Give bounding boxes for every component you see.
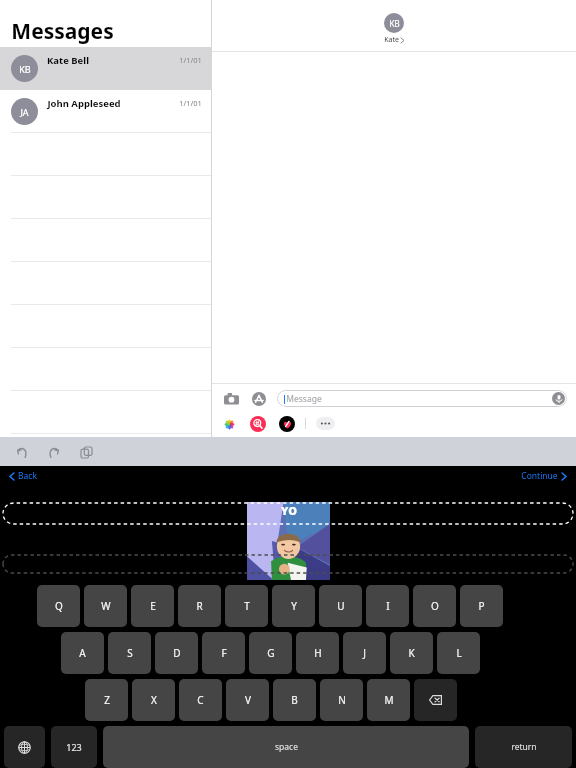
button[interactable]: J — [343, 632, 386, 674]
button[interactable]: YO — [247, 502, 330, 580]
button[interactable]: G — [249, 632, 292, 674]
button[interactable]: 123 — [51, 726, 97, 768]
staticText: F — [221, 646, 227, 660]
button[interactable]: Redo — [44, 442, 64, 462]
button[interactable]: Kate — [384, 35, 404, 45]
staticText: E — [150, 599, 156, 613]
button[interactable] — [2, 554, 574, 574]
button[interactable] — [0, 219, 211, 262]
button[interactable]: E — [131, 585, 174, 627]
button[interactable]: return — [475, 726, 572, 768]
staticText: KB — [19, 63, 31, 75]
button[interactable]: K — [390, 632, 433, 674]
button[interactable]: P — [460, 585, 503, 627]
staticText: return — [511, 741, 537, 753]
button[interactable] — [0, 434, 211, 477]
staticText: A — [79, 646, 86, 660]
button[interactable]: Back — [10, 470, 37, 482]
button[interactable]: Z — [85, 679, 128, 721]
staticText: X — [151, 693, 157, 707]
staticText: JA — [20, 106, 29, 118]
button[interactable]: KB — [384, 13, 404, 33]
button[interactable] — [2, 502, 574, 525]
staticText: 123 — [66, 741, 82, 753]
staticText: KB — [389, 18, 400, 29]
staticText: 1/1/01 — [179, 98, 202, 108]
staticText: N — [338, 693, 346, 707]
button[interactable]: I — [366, 585, 409, 627]
staticText: O — [431, 599, 439, 613]
button[interactable] — [0, 305, 211, 348]
staticText: Message — [286, 393, 322, 405]
staticText: I — [386, 599, 390, 613]
staticText: D — [173, 646, 181, 660]
staticText: W — [101, 599, 111, 613]
staticText: L — [456, 646, 462, 660]
button[interactable]: A — [61, 632, 104, 674]
button[interactable]: B — [273, 679, 316, 721]
button[interactable] — [0, 176, 211, 219]
staticText: K — [408, 646, 415, 660]
button[interactable]: Undo — [12, 442, 32, 462]
button[interactable]: JA — [0, 90, 211, 133]
button[interactable]: C — [179, 679, 222, 721]
button[interactable]: App Store — [249, 389, 269, 409]
button[interactable]: Y — [272, 585, 315, 627]
staticText: R — [196, 599, 203, 613]
staticText: Y — [291, 599, 297, 613]
staticText: V — [245, 693, 251, 707]
button[interactable]: Message — [277, 390, 567, 407]
button[interactable]: Images — [250, 416, 266, 432]
button[interactable]: Photos — [221, 416, 237, 432]
staticText: T — [244, 599, 250, 613]
button[interactable]: R — [178, 585, 221, 627]
button[interactable]: F — [202, 632, 245, 674]
button[interactable] — [0, 348, 211, 391]
staticText: M — [384, 693, 394, 707]
button[interactable]: N — [320, 679, 363, 721]
staticText: B — [291, 693, 298, 707]
staticText: space — [275, 741, 298, 753]
button[interactable]: More apps — [316, 417, 335, 430]
staticText: C — [197, 693, 204, 707]
button[interactable]: Dictate — [552, 392, 565, 405]
button[interactable]: Paste — [76, 442, 96, 462]
staticText: John Appleseed — [47, 97, 121, 110]
staticText: U — [337, 599, 345, 613]
staticText: Kate Bell — [47, 54, 89, 67]
button[interactable]: W — [84, 585, 127, 627]
button[interactable]: U — [319, 585, 362, 627]
button[interactable]: KB — [0, 47, 211, 90]
staticText: J — [363, 646, 366, 660]
staticText: 1/1/01 — [179, 55, 202, 65]
button[interactable]: H — [296, 632, 339, 674]
button[interactable] — [0, 133, 211, 176]
button[interactable]: Q — [37, 585, 80, 627]
button[interactable] — [0, 262, 211, 305]
staticText: YO — [281, 503, 297, 518]
staticText: Kate — [384, 35, 399, 45]
button[interactable]: Camera — [221, 389, 241, 409]
staticText: H — [314, 646, 322, 660]
button[interactable]: Switch keyboard — [4, 726, 45, 768]
button[interactable]: X — [132, 679, 175, 721]
button[interactable]: S — [108, 632, 151, 674]
button[interactable] — [0, 391, 211, 434]
button[interactable]: Digital Touch — [279, 416, 295, 432]
button[interactable]: D — [155, 632, 198, 674]
button[interactable]: T — [225, 585, 268, 627]
button[interactable]: O — [413, 585, 456, 627]
button[interactable]: L — [437, 632, 480, 674]
button[interactable]: space — [103, 726, 469, 768]
staticText: S — [127, 646, 133, 660]
button[interactable]: M — [367, 679, 410, 721]
staticText: G — [267, 646, 275, 660]
staticText: P — [478, 599, 485, 613]
staticText: Z — [104, 693, 110, 707]
button[interactable]: Continue — [521, 470, 566, 482]
button[interactable]: V — [226, 679, 269, 721]
button[interactable]: Backspace — [414, 679, 457, 721]
